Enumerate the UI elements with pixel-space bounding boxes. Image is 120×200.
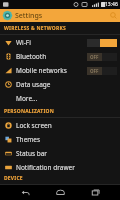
staticText: Bluetooth bbox=[16, 52, 87, 61]
button[interactable]: Home bbox=[50, 185, 70, 200]
staticText: 13:46 bbox=[105, 1, 118, 8]
button[interactable]: Lock screen bbox=[0, 118, 120, 132]
staticText: Settings bbox=[15, 11, 107, 21]
staticText: Data usage bbox=[16, 80, 120, 89]
button[interactable]: More... bbox=[0, 91, 120, 105]
staticText: Lock screen bbox=[16, 121, 120, 130]
button[interactable]: Data usage bbox=[0, 77, 120, 91]
staticText: OFF bbox=[90, 54, 99, 60]
staticText: WIRELESS & NETWORKS bbox=[4, 25, 66, 32]
staticText: Mobile networks bbox=[16, 66, 87, 75]
button[interactable]: Themes bbox=[0, 132, 120, 146]
staticText: Status bar bbox=[16, 149, 120, 158]
button[interactable]: Toggle on bbox=[87, 38, 117, 47]
button[interactable]: Settings app icon bbox=[2, 10, 13, 21]
staticText: Wi-Fi bbox=[16, 38, 87, 47]
button[interactable]: Back bbox=[15, 185, 35, 200]
staticText: Themes bbox=[16, 135, 120, 144]
button[interactable]: Bluetooth bbox=[0, 49, 120, 63]
button[interactable]: Mobile networks bbox=[0, 63, 120, 77]
staticText: Notification drawer bbox=[16, 163, 120, 172]
staticText: OFF bbox=[90, 68, 99, 74]
button[interactable]: Recents bbox=[85, 185, 105, 200]
button[interactable]: Notification drawer bbox=[0, 160, 120, 174]
button[interactable]: Status bar bbox=[0, 146, 120, 160]
button[interactable]: Toggle off bbox=[87, 66, 117, 75]
button[interactable]: Toggle off bbox=[87, 52, 117, 61]
button[interactable]: Search bbox=[107, 9, 120, 22]
staticText: PERSONALIZATION bbox=[4, 108, 55, 115]
button[interactable]: Wi-Fi bbox=[0, 35, 120, 49]
staticText: More... bbox=[16, 94, 120, 103]
staticText: DEVICE bbox=[4, 175, 23, 182]
